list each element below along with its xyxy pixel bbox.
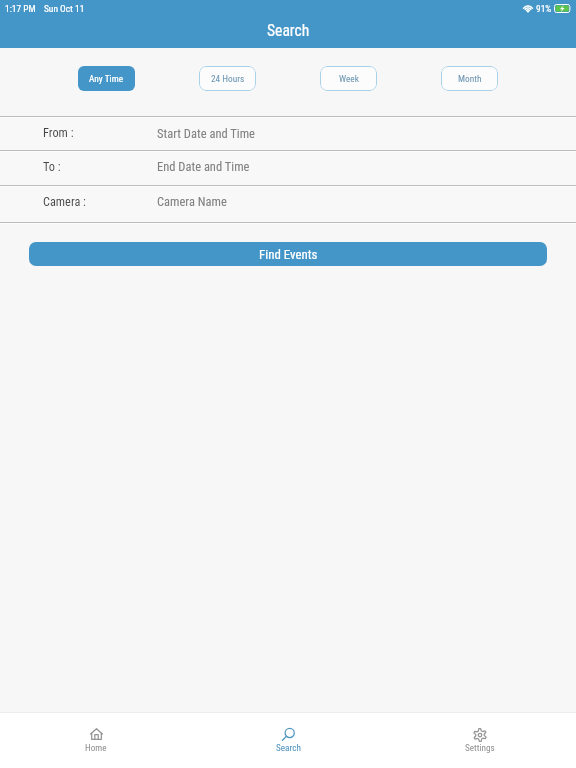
staticText: To : [43, 160, 61, 174]
button[interactable]: Search [192, 713, 384, 768]
button[interactable]: Home [0, 713, 192, 768]
button[interactable]: From : [0, 118, 576, 150]
staticText: Find Events [259, 247, 318, 262]
staticText: Any Time [89, 73, 124, 84]
staticText: Start Date and Time [157, 126, 255, 141]
staticText: Settings [465, 742, 495, 753]
staticText: 1:17 PM [5, 3, 36, 14]
button[interactable]: To : [0, 152, 576, 185]
staticText: 24 Hours [211, 73, 245, 84]
staticText: Sun Oct 11 [44, 3, 85, 14]
staticText: Camera : [43, 195, 86, 209]
button[interactable]: Camera : [0, 187, 576, 222]
button[interactable]: Month [441, 66, 498, 91]
button[interactable]: Any Time [78, 66, 135, 91]
button[interactable]: Find Events [29, 242, 547, 266]
staticText: 91% [536, 3, 552, 14]
button[interactable]: 24 Hours [199, 66, 256, 91]
button[interactable]: Settings [384, 713, 576, 768]
staticText: Month [458, 73, 482, 84]
staticText: From : [43, 126, 74, 140]
staticText: End Date and Time [157, 159, 250, 174]
staticText: Search [276, 742, 301, 753]
staticText: Camera Name [157, 194, 227, 209]
button[interactable]: Week [320, 66, 377, 91]
staticText: Week [339, 73, 359, 84]
staticText: Home [85, 742, 107, 753]
staticText: Search [267, 22, 310, 40]
